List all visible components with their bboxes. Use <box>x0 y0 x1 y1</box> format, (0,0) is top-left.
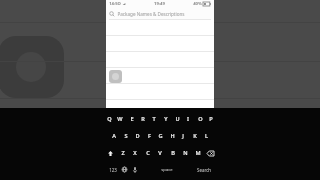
button[interactable]: R <box>139 114 147 124</box>
button[interactable] <box>106 52 214 68</box>
button[interactable]: D <box>133 131 141 141</box>
button[interactable]: T <box>150 114 158 124</box>
staticText: G <box>158 132 163 140</box>
button[interactable]: space <box>157 167 177 173</box>
button[interactable]: S <box>122 131 130 141</box>
staticText: Q <box>107 115 112 123</box>
staticText: N <box>183 149 188 157</box>
button[interactable]: G <box>156 131 164 141</box>
staticText: H <box>170 132 175 140</box>
staticText: U <box>175 115 180 123</box>
staticText: W <box>117 115 123 123</box>
staticText: B <box>171 149 175 157</box>
button[interactable]: H <box>168 131 176 141</box>
staticText: K <box>193 132 197 140</box>
staticText: P <box>209 115 213 123</box>
staticText: A <box>112 132 116 140</box>
staticText: D <box>135 132 140 140</box>
button[interactable]: A <box>110 131 118 141</box>
staticText: T <box>152 115 156 123</box>
button[interactable]: L <box>202 131 210 141</box>
button[interactable]: N <box>181 148 189 158</box>
staticText: O <box>198 115 203 123</box>
staticText: J <box>182 132 184 140</box>
button[interactable]: Backspace <box>206 149 214 157</box>
staticText: 40% <box>193 1 202 7</box>
button[interactable]: P <box>207 114 215 124</box>
staticText: V <box>158 149 162 157</box>
button[interactable]: U <box>173 114 181 124</box>
staticText: 19:49 <box>154 1 165 7</box>
button[interactable]: C <box>144 148 152 158</box>
button[interactable] <box>106 20 214 36</box>
staticText: Z <box>121 149 125 157</box>
staticText: L <box>205 132 208 140</box>
button[interactable]: Y <box>162 114 170 124</box>
staticText: 14:5O <box>109 1 121 7</box>
staticText: Search <box>197 167 211 173</box>
staticText: C <box>146 149 150 157</box>
button[interactable]: I <box>184 114 192 124</box>
button[interactable]: Q <box>105 114 113 124</box>
staticText: 123 <box>109 167 117 173</box>
button[interactable]: K <box>191 131 199 141</box>
button[interactable]: 123 <box>108 167 118 173</box>
staticText: space <box>161 167 173 173</box>
button[interactable]: J <box>179 131 187 141</box>
button[interactable]: Change keyboard language <box>121 166 128 173</box>
button[interactable]: B <box>169 148 177 158</box>
staticText: X <box>133 149 137 157</box>
button[interactable]: M <box>194 148 202 158</box>
staticText: Package Names & Descriptions <box>117 11 185 17</box>
staticText: R <box>141 115 145 123</box>
button[interactable]: O <box>196 114 204 124</box>
button[interactable]: Z <box>119 148 127 158</box>
button[interactable] <box>106 68 214 84</box>
button[interactable] <box>106 100 214 116</box>
button[interactable]: V <box>156 148 164 158</box>
button[interactable]: X <box>131 148 139 158</box>
staticText: M <box>195 149 201 157</box>
staticText: F <box>148 132 151 140</box>
button[interactable] <box>106 84 214 100</box>
button[interactable]: W <box>116 114 124 124</box>
staticText: I <box>187 115 189 123</box>
button[interactable]: Search <box>196 167 212 173</box>
button[interactable]: E <box>128 114 136 124</box>
staticText: E <box>130 115 134 123</box>
button[interactable]: Shift <box>106 149 114 157</box>
staticText: S <box>124 132 128 140</box>
button[interactable]: F <box>145 131 153 141</box>
button[interactable] <box>106 36 214 52</box>
button[interactable]: Voice input <box>131 166 138 173</box>
button[interactable]: Search <box>106 8 214 20</box>
staticText: Y <box>164 115 168 123</box>
other: Search <box>109 11 115 17</box>
